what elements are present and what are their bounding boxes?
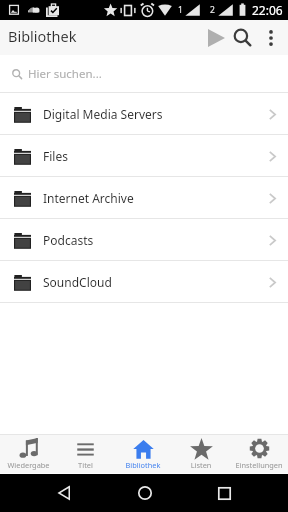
button[interactable]: Wiedergabe bbox=[0, 435, 57, 473]
staticText: 1 bbox=[178, 4, 183, 16]
staticText: Podcasts bbox=[43, 232, 94, 248]
staticText: Bibliothek bbox=[114, 460, 172, 470]
button[interactable]: Home bbox=[127, 475, 163, 511]
staticText: Titel bbox=[57, 460, 114, 470]
button[interactable]: Hier suchen... bbox=[0, 55, 288, 93]
button[interactable]: Einstellungen bbox=[230, 435, 288, 473]
button[interactable]: Podcasts bbox=[0, 219, 288, 261]
staticText: Internet Archive bbox=[43, 190, 134, 206]
staticText: Files bbox=[43, 148, 68, 164]
button[interactable]: Recent apps bbox=[206, 475, 242, 511]
staticText: SoundCloud bbox=[43, 274, 112, 290]
button[interactable]: Back bbox=[46, 475, 82, 511]
button[interactable]: Play bbox=[203, 20, 230, 55]
button[interactable]: Files bbox=[0, 135, 288, 177]
staticText: 22:06 bbox=[252, 2, 283, 18]
staticText: 2 bbox=[210, 4, 215, 16]
button[interactable]: Digital Media Servers bbox=[0, 93, 288, 135]
staticText: Hier suchen... bbox=[28, 66, 102, 82]
staticText: Digital Media Servers bbox=[43, 106, 163, 122]
button[interactable]: Titel bbox=[57, 435, 114, 473]
staticText: Wiedergabe bbox=[0, 460, 57, 470]
button[interactable]: Bibliothek bbox=[114, 435, 172, 473]
button[interactable]: Search bbox=[230, 21, 257, 56]
staticText: Einstellungen bbox=[230, 460, 288, 470]
staticText: Bibliothek bbox=[8, 26, 77, 46]
button[interactable]: More options bbox=[258, 20, 284, 55]
button[interactable]: SoundCloud bbox=[0, 261, 288, 303]
button[interactable]: Listen bbox=[172, 435, 230, 473]
staticText: Listen bbox=[172, 460, 230, 470]
button[interactable]: Internet Archive bbox=[0, 177, 288, 219]
